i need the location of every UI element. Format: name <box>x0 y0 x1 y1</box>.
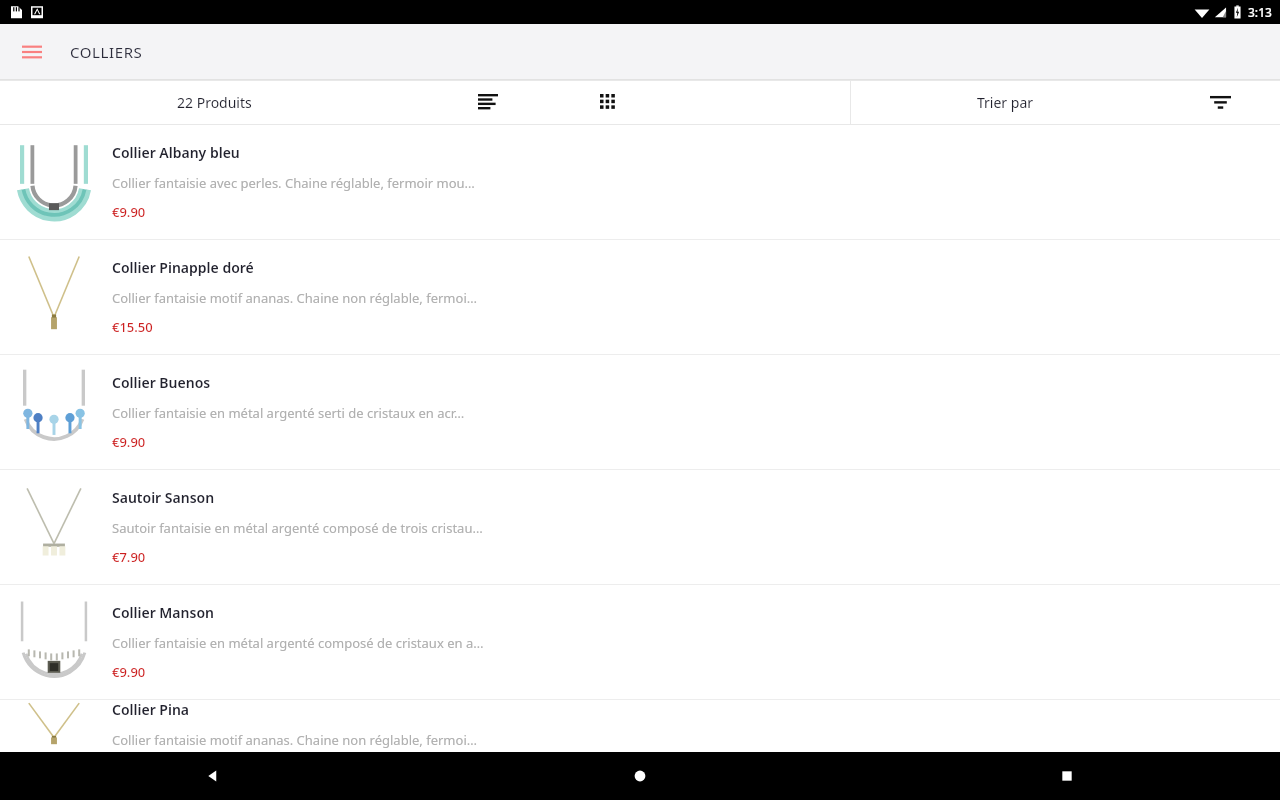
button[interactable]: Collier Pinapple doré <box>0 240 1280 354</box>
staticText: €9.90 <box>112 663 146 681</box>
staticText: Collier Pina <box>112 700 190 719</box>
button[interactable]: Collier Albany bleu <box>0 125 1280 239</box>
button[interactable]: Sautoir Sanson <box>0 470 1280 584</box>
button[interactable]: List view <box>428 80 548 125</box>
staticText: Trier par <box>977 93 1034 112</box>
staticText: Collier fantaisie avec perles. Chaine ré… <box>112 174 475 192</box>
staticText: Sautoir Sanson <box>112 488 215 507</box>
staticText: COLLIERS <box>70 42 143 62</box>
button[interactable]: Collier Buenos <box>0 355 1280 469</box>
staticText: Sautoir fantaisie en métal argenté compo… <box>112 519 483 537</box>
staticText: Collier fantaisie motif ananas. Chaine n… <box>112 731 478 749</box>
staticText: Collier Buenos <box>112 373 211 392</box>
staticText: Collier Manson <box>112 603 214 622</box>
staticText: Collier fantaisie en métal argenté compo… <box>112 634 484 652</box>
staticText: Collier Pinapple doré <box>112 258 254 277</box>
button[interactable]: Collier Pina <box>0 700 1280 752</box>
button[interactable]: Trier par <box>851 80 1160 125</box>
staticText: 3:13 <box>1248 4 1272 20</box>
staticText: Collier fantaisie en métal argenté serti… <box>112 404 465 422</box>
button[interactable]: Home <box>426 752 853 800</box>
button[interactable]: Collier Manson <box>0 585 1280 699</box>
staticText: €7.90 <box>112 548 146 566</box>
staticText: 22 Produits <box>177 93 252 112</box>
button[interactable]: Filter <box>1160 80 1280 125</box>
staticText: €9.90 <box>112 203 146 221</box>
staticText: Collier Albany bleu <box>112 143 240 162</box>
staticText: Collier fantaisie motif ananas. Chaine n… <box>112 289 478 307</box>
button[interactable]: Recent apps <box>853 752 1280 800</box>
button[interactable]: Back <box>0 752 426 800</box>
button[interactable]: Open navigation menu <box>12 32 52 72</box>
button[interactable]: Grid view <box>548 80 668 125</box>
staticText: €9.90 <box>112 433 146 451</box>
staticText: €15.50 <box>112 318 153 336</box>
